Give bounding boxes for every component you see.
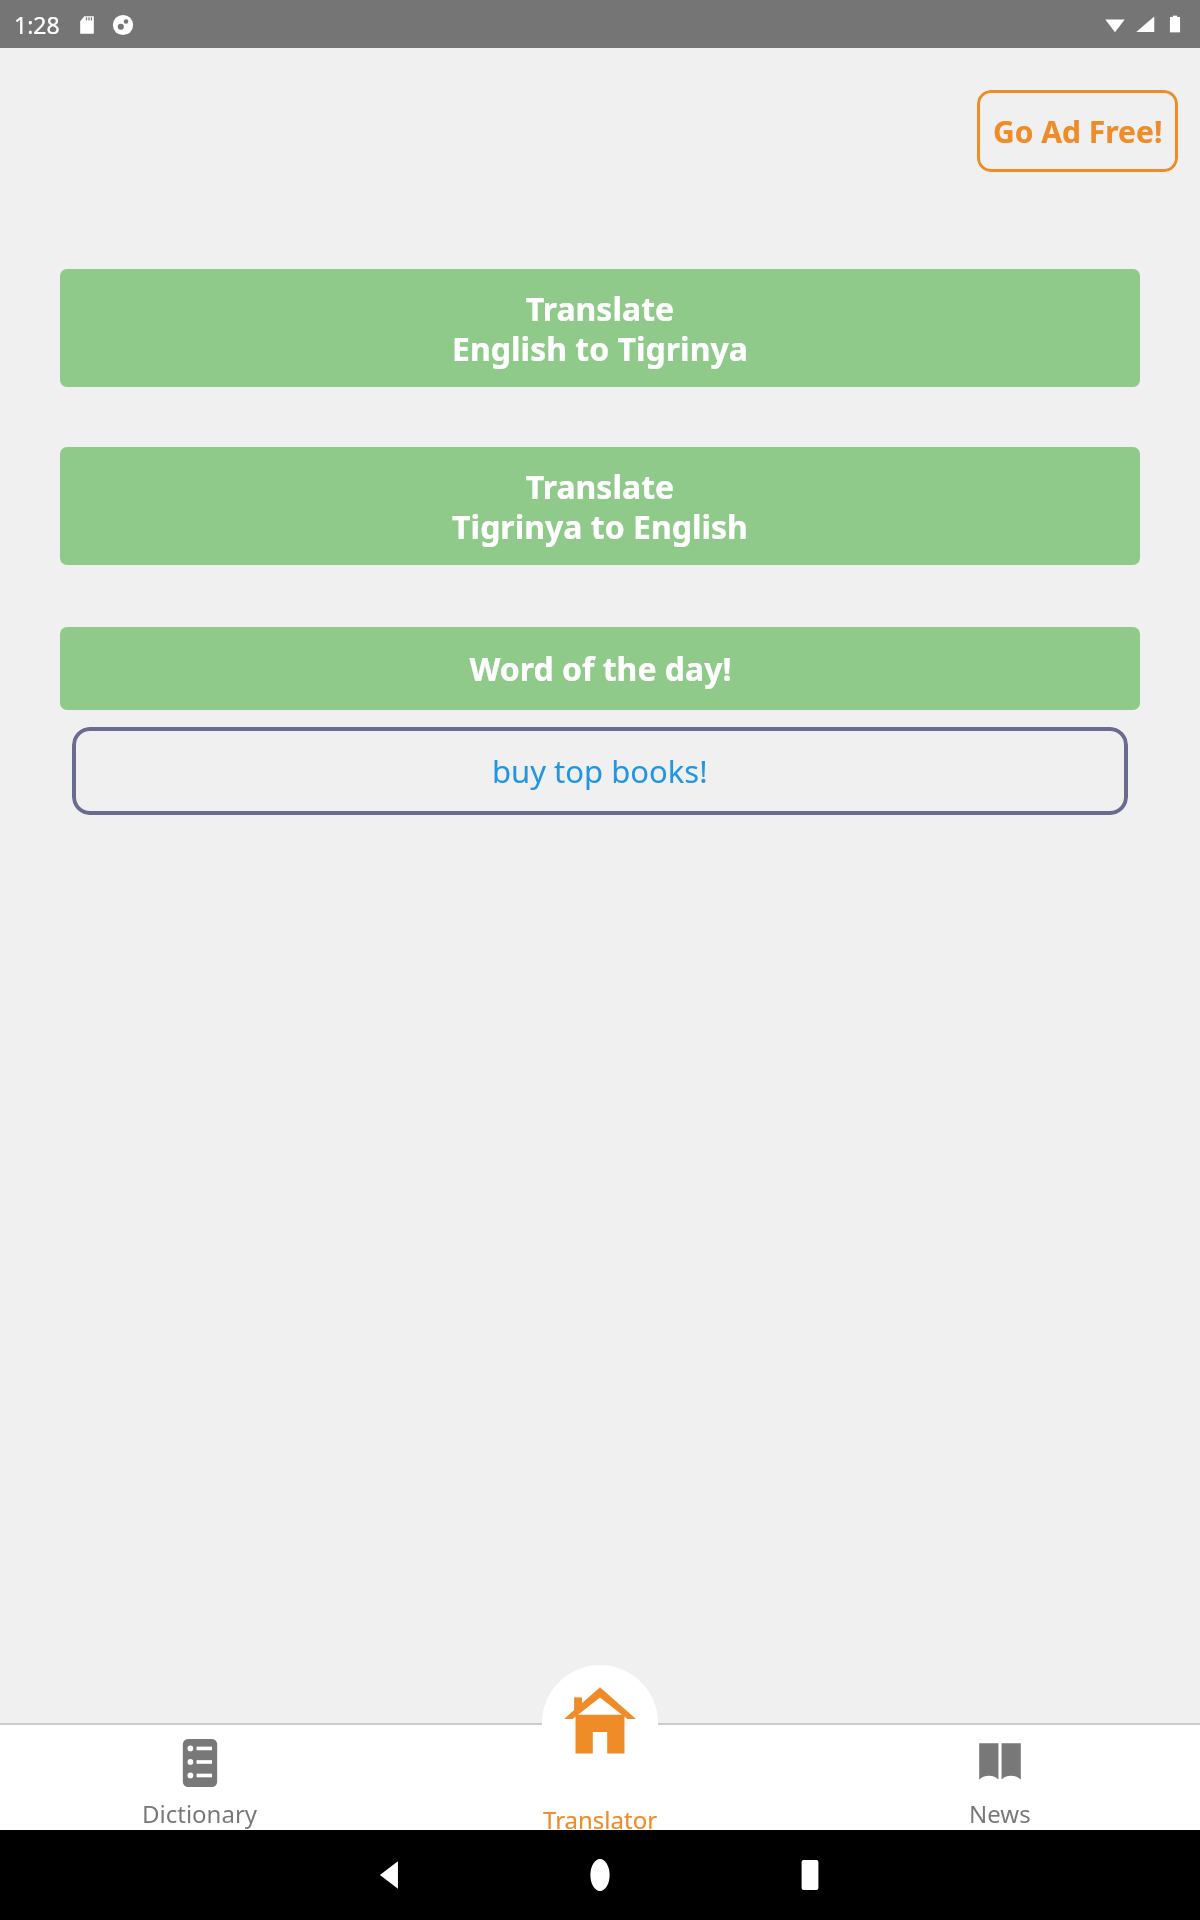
staticText: Translate English to Tigrinya <box>452 287 748 370</box>
button[interactable]: News <box>800 1723 1200 1830</box>
staticText: buy top books! <box>492 750 708 792</box>
other: Back <box>372 1857 408 1893</box>
button[interactable]: Dictionary <box>0 1723 400 1830</box>
staticText: Dictionary <box>142 1797 258 1830</box>
staticText: 1:28 <box>14 9 60 40</box>
button[interactable]: Go Ad Free! <box>977 90 1178 172</box>
button[interactable]: buy top books! <box>72 727 1128 815</box>
button[interactable]: Word of the day! <box>60 627 1140 710</box>
other: Home <box>584 1859 616 1891</box>
staticText: News <box>969 1797 1031 1830</box>
other: Recents <box>795 1860 825 1890</box>
other: News <box>974 1737 1026 1789</box>
button[interactable]: Translate English to Tigrinya <box>60 269 1140 387</box>
other: Dictionary <box>174 1737 226 1789</box>
button[interactable]: Translate Tigrinya to English <box>60 447 1140 565</box>
staticText: Word of the day! <box>469 647 732 691</box>
staticText: Go Ad Free! <box>993 111 1163 152</box>
staticText: Translate Tigrinya to English <box>452 465 748 548</box>
other: Translator <box>564 1683 636 1755</box>
button[interactable]: Translator <box>400 1723 800 1830</box>
staticText: Translator <box>543 1803 658 1830</box>
